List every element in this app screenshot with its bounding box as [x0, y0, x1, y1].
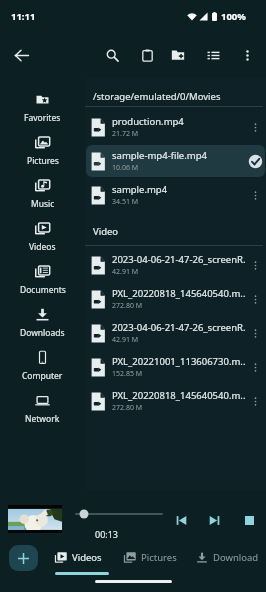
staticText: /storage/emulated/0/Movies [93, 90, 221, 103]
staticText: Downloads [20, 327, 65, 339]
button[interactable]: More [248, 188, 263, 203]
staticText: Videos [29, 241, 56, 253]
button[interactable]: Previous [170, 509, 192, 531]
button[interactable]: production.mp4 [86, 111, 265, 143]
staticText: sample-mp4-file.mp4 [112, 149, 207, 162]
staticText: 272.80 M [112, 301, 143, 311]
button[interactable]: Computer [0, 345, 85, 388]
staticText: 42.91 M [112, 267, 139, 277]
staticText: production.mp4 [112, 115, 184, 128]
button[interactable]: PXL_20220818_145640540.m... [86, 283, 265, 315]
button[interactable]: Videos [0, 216, 85, 259]
button[interactable]: Search [100, 43, 124, 67]
button[interactable]: Music [0, 173, 85, 216]
staticText: 100% [221, 10, 246, 23]
staticText: sample.mp4 [112, 183, 168, 196]
button[interactable]: Paste [135, 43, 159, 67]
button[interactable]: 2023-04-06-21-47-26_screenR... [86, 317, 265, 349]
staticText: PXL_20220818_145640540.m... [112, 389, 245, 402]
button[interactable]: More [248, 394, 263, 409]
staticText: 42.91 M [112, 335, 139, 345]
button[interactable]: sample.mp4 [86, 179, 265, 211]
button[interactable]: Downloads [0, 302, 85, 345]
button[interactable]: Videos [55, 546, 109, 575]
staticText: 34.51 M [112, 197, 139, 207]
staticText: Pictures [141, 551, 177, 564]
staticText: Pictures [27, 155, 59, 167]
staticText: PXL_20220818_145640540.m... [112, 287, 245, 300]
button[interactable]: Documents [0, 259, 85, 302]
button[interactable]: Selected [248, 154, 263, 169]
button[interactable]: Pictures [124, 546, 177, 572]
staticText: 21.72 M [112, 129, 139, 139]
staticText: Videos [72, 551, 102, 564]
button[interactable]: Stop [238, 509, 260, 531]
button[interactable]: Seek bar [72, 509, 162, 519]
staticText: 00:13 [95, 528, 119, 540]
staticText: Network [25, 413, 60, 425]
button[interactable]: PXL_20221001_113606730.m... [86, 351, 265, 383]
staticText: 10.06 M [112, 163, 139, 173]
button[interactable]: sample-mp4-file.mp4 [86, 145, 265, 177]
button[interactable]: Back [7, 41, 35, 69]
staticText: Download [213, 551, 259, 564]
staticText: 272.80 M [112, 403, 143, 413]
button[interactable]: 2023-04-06-21-47-26_screenR... [86, 249, 265, 281]
staticText: PXL_20221001_113606730.m... [112, 355, 245, 368]
button[interactable]: Pictures [0, 130, 85, 173]
button[interactable]: New folder [166, 43, 190, 67]
staticText: 11:11 [11, 10, 36, 23]
button[interactable]: Download [196, 546, 259, 572]
button[interactable]: PXL_20220818_145640540.m... [86, 385, 265, 417]
staticText: 2023-04-06-21-47-26_screenR... [112, 321, 245, 334]
button[interactable]: More [248, 292, 263, 307]
button[interactable]: More [248, 120, 263, 135]
button[interactable]: Sort [201, 43, 225, 67]
button[interactable]: Add [9, 545, 38, 571]
button[interactable]: Favorites [0, 87, 85, 130]
staticText: 152.85 M [112, 369, 143, 379]
button[interactable]: More options [235, 43, 259, 67]
staticText: Documents [20, 284, 66, 296]
button[interactable]: More [248, 326, 263, 341]
button[interactable]: More [248, 360, 263, 375]
button[interactable]: Now playing [8, 505, 62, 533]
staticText: Video [93, 225, 119, 238]
staticText: 2023-04-06-21-47-26_screenR... [112, 253, 245, 266]
button[interactable]: More [248, 258, 263, 273]
staticText: Music [31, 198, 55, 210]
staticText: Favorites [24, 112, 61, 124]
button[interactable]: Next [203, 509, 225, 531]
button[interactable]: Network [0, 388, 85, 431]
staticText: Computer [22, 370, 63, 382]
